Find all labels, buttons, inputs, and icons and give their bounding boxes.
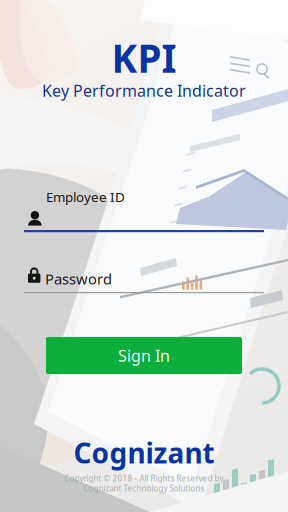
staticText: KPI bbox=[111, 32, 176, 83]
staticText: Sign In bbox=[118, 345, 170, 366]
staticText: Copyright © 2018 - All Rights Reserved b… bbox=[64, 473, 223, 484]
staticText: Employee ID bbox=[46, 188, 125, 206]
staticText: Cognizant Technology Solutions bbox=[83, 483, 204, 494]
staticText: Cognizant bbox=[73, 434, 214, 471]
button[interactable]: Sign In bbox=[46, 337, 242, 374]
staticText: Password bbox=[45, 269, 112, 288]
staticText: Key Performance Indicator bbox=[42, 80, 246, 101]
